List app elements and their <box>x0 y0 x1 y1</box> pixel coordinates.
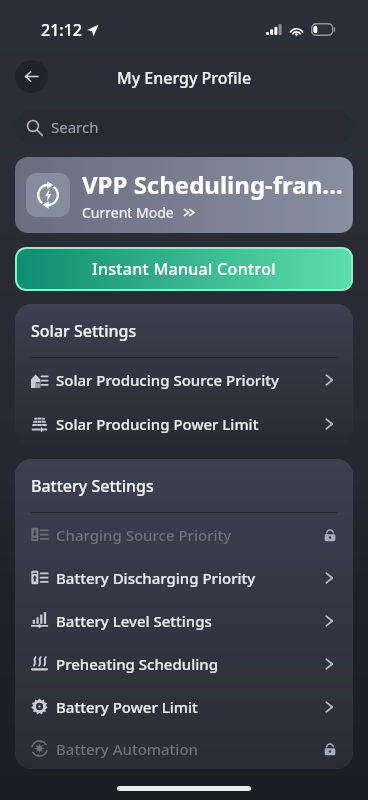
staticText: Instant Manual Control <box>92 258 276 280</box>
button[interactable]: Instant Manual Control <box>15 247 353 291</box>
staticText: My Energy Profile <box>117 67 252 89</box>
button[interactable]: Back <box>15 60 48 93</box>
button[interactable]: Battery Discharging Priority <box>15 556 353 599</box>
staticText: Search <box>51 117 99 137</box>
staticText: Battery Settings <box>31 475 154 497</box>
button[interactable]: Battery Level Settings <box>15 599 353 642</box>
staticText: Battery Discharging Priority <box>56 568 256 588</box>
staticText: Charging Source Priority <box>56 525 232 545</box>
button[interactable]: Preheating Scheduling <box>15 642 353 685</box>
button[interactable]: Charging Source Priority <box>15 513 353 556</box>
staticText: Preheating Scheduling <box>56 654 218 674</box>
staticText: Solar Settings <box>31 320 137 342</box>
staticText: Battery Power Limit <box>56 697 198 717</box>
button[interactable]: Solar Producing Power Limit <box>15 402 353 446</box>
staticText: Battery Level Settings <box>56 611 212 631</box>
staticText: 21:12 <box>41 19 82 41</box>
staticText: Battery Automation <box>56 739 198 759</box>
button[interactable]: Battery Power Limit <box>15 685 353 728</box>
staticText: Current Mode <box>82 203 174 222</box>
staticText: VPP Scheduling-fran… <box>82 168 343 201</box>
staticText: Solar Producing Source Priority <box>56 370 279 390</box>
button[interactable]: Solar Producing Source Priority <box>15 358 353 402</box>
button[interactable]: Search <box>15 110 353 144</box>
button[interactable]: Battery Automation <box>15 728 353 769</box>
staticText: Solar Producing Power Limit <box>56 414 259 434</box>
button[interactable]: VPP Scheduling-fran… <box>15 157 353 233</box>
